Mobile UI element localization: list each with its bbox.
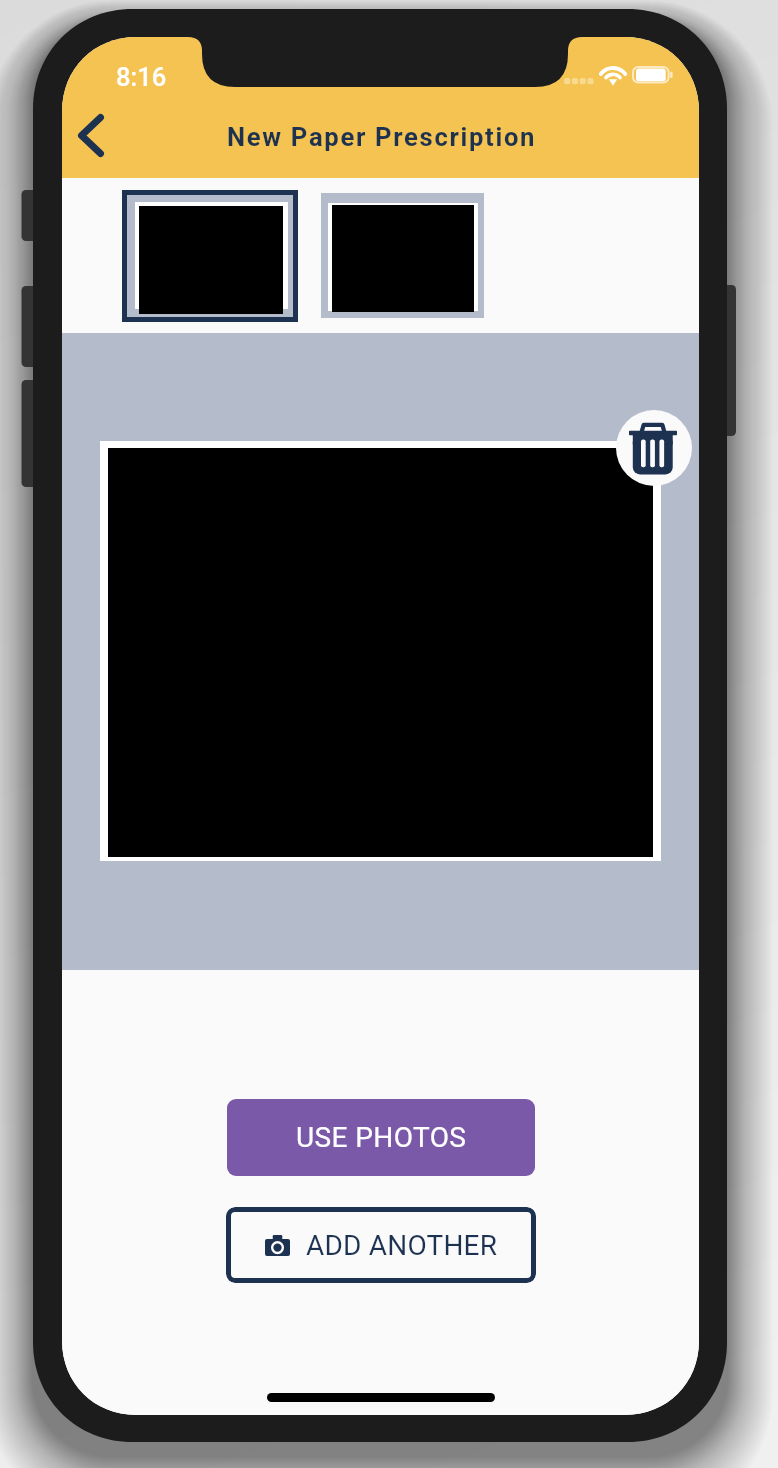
button[interactable]: Delete photo — [616, 410, 692, 486]
staticText: USE PHOTOS — [296, 1121, 467, 1154]
button[interactable] — [127, 195, 293, 317]
button[interactable] — [321, 193, 484, 318]
button[interactable]: USE PHOTOS — [227, 1099, 535, 1176]
staticText: New Paper Prescription — [227, 122, 537, 152]
staticText: ADD ANOTHER — [306, 1229, 498, 1262]
staticText: 8:16 — [116, 62, 167, 92]
button[interactable]: Back — [62, 107, 122, 163]
button[interactable]: ADD ANOTHER — [226, 1207, 536, 1283]
